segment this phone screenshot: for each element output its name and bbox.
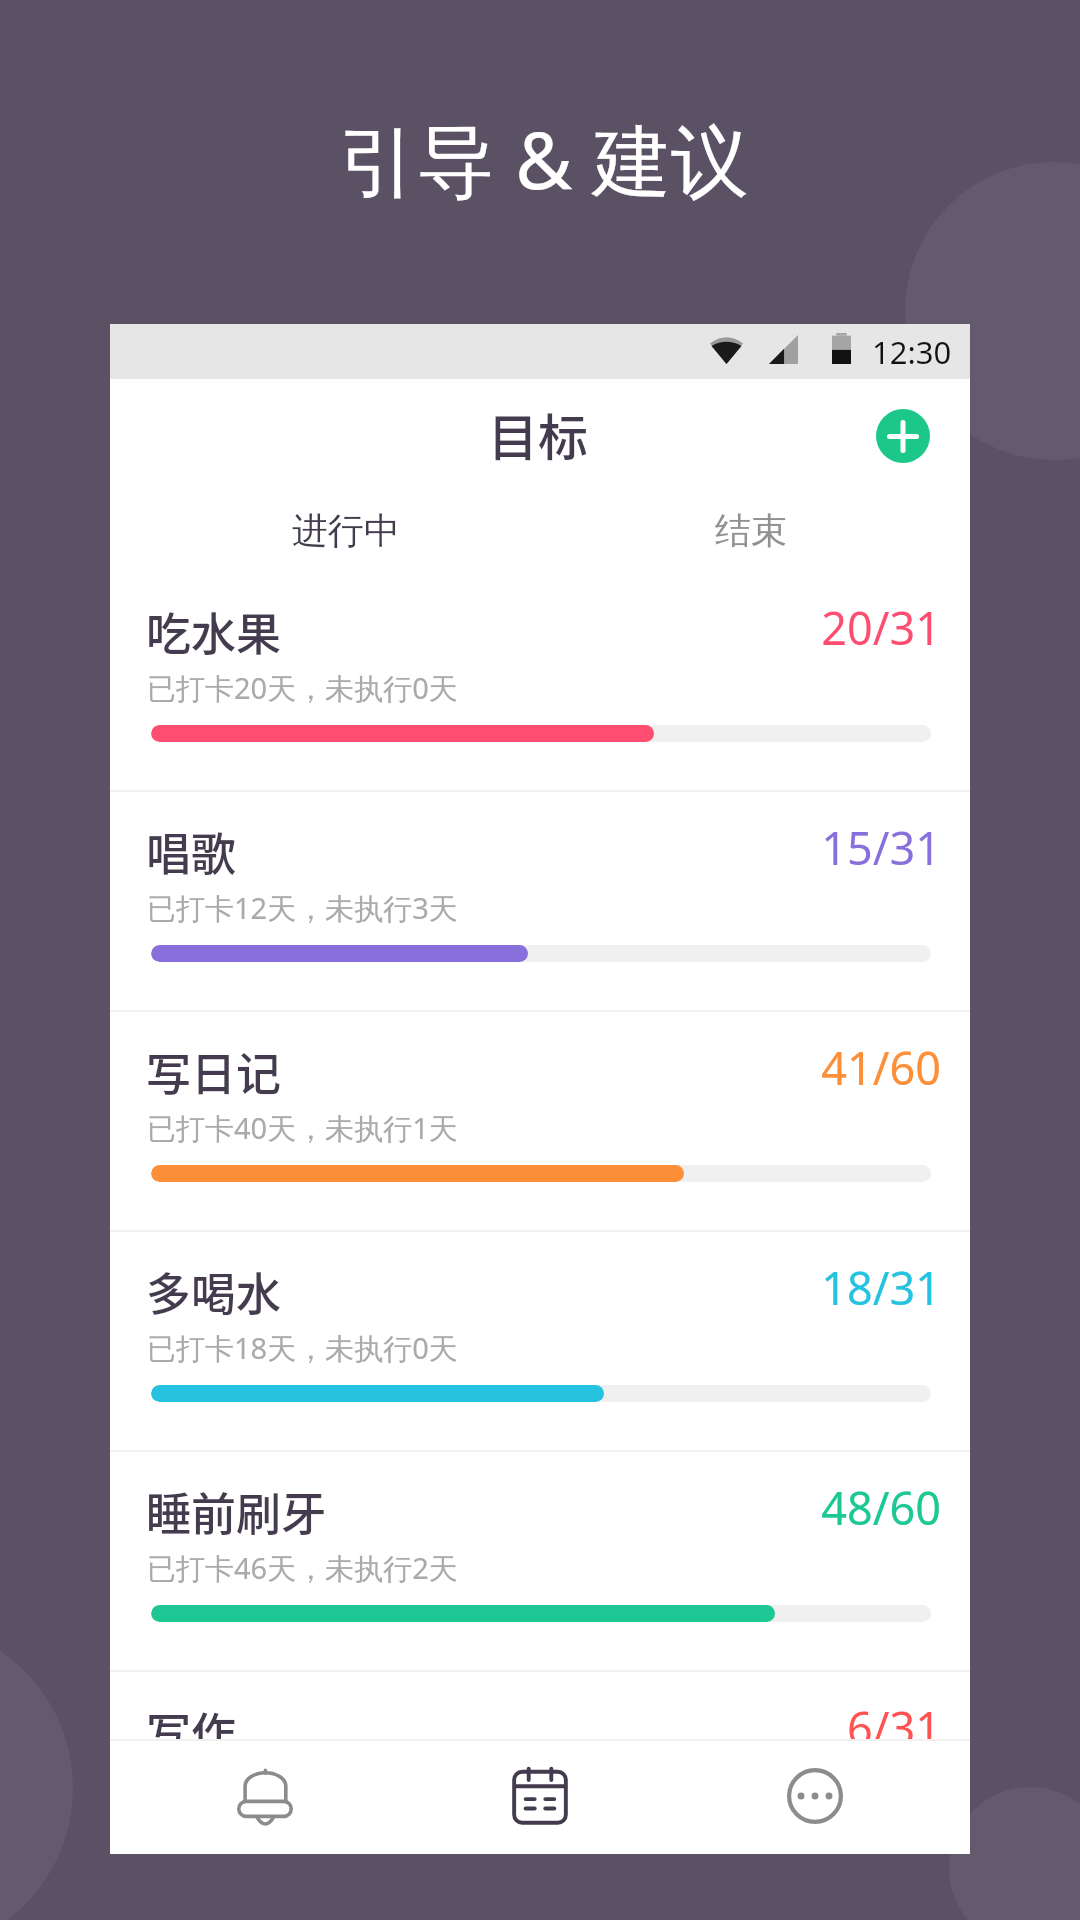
button[interactable]: 吃水果 (110, 572, 970, 790)
staticText: 吃水果 (146, 599, 282, 664)
staticText: 写作 (146, 1699, 237, 1739)
staticText: 41/60 (110, 1037, 941, 1098)
staticText: 目标 (488, 398, 588, 470)
staticText: 唱歌 (146, 819, 237, 884)
staticText: 已打卡12天，未执行3天 (147, 888, 458, 928)
staticText: 18/31 (110, 1257, 941, 1318)
button[interactable]: 多喝水 (110, 1232, 970, 1450)
staticText: 已打卡20天，未执行0天 (147, 668, 458, 708)
staticText: 15/31 (110, 817, 941, 878)
staticText: 结束 (715, 508, 787, 553)
staticText: 20/31 (110, 597, 941, 658)
staticText: 6/31 (110, 1697, 941, 1739)
staticText: 多喝水 (146, 1259, 282, 1324)
button[interactable]: 写作 (110, 1672, 970, 1739)
button[interactable]: Calendar (403, 1741, 678, 1854)
staticText: 已打卡40天，未执行1天 (147, 1108, 458, 1148)
staticText: 已打卡18天，未执行0天 (147, 1328, 458, 1368)
button[interactable]: Reminders (127, 1741, 403, 1854)
button[interactable]: 结束 (548, 492, 953, 572)
staticText: 睡前刷牙 (146, 1479, 327, 1544)
button[interactable]: More (678, 1741, 953, 1854)
staticText: 写日记 (146, 1039, 282, 1104)
button[interactable]: 睡前刷牙 (110, 1452, 970, 1670)
button[interactable]: Add goal (876, 409, 930, 463)
button[interactable]: 唱歌 (110, 792, 970, 1010)
staticText: 已打卡46天，未执行2天 (147, 1548, 458, 1588)
staticText: 12:30 (872, 331, 952, 373)
button[interactable]: 写日记 (110, 1012, 970, 1230)
staticText: 48/60 (110, 1477, 941, 1538)
staticText: 进行中 (292, 508, 400, 553)
button[interactable]: 进行中 (143, 492, 548, 572)
staticText: 引导 & 建议 (339, 106, 749, 213)
